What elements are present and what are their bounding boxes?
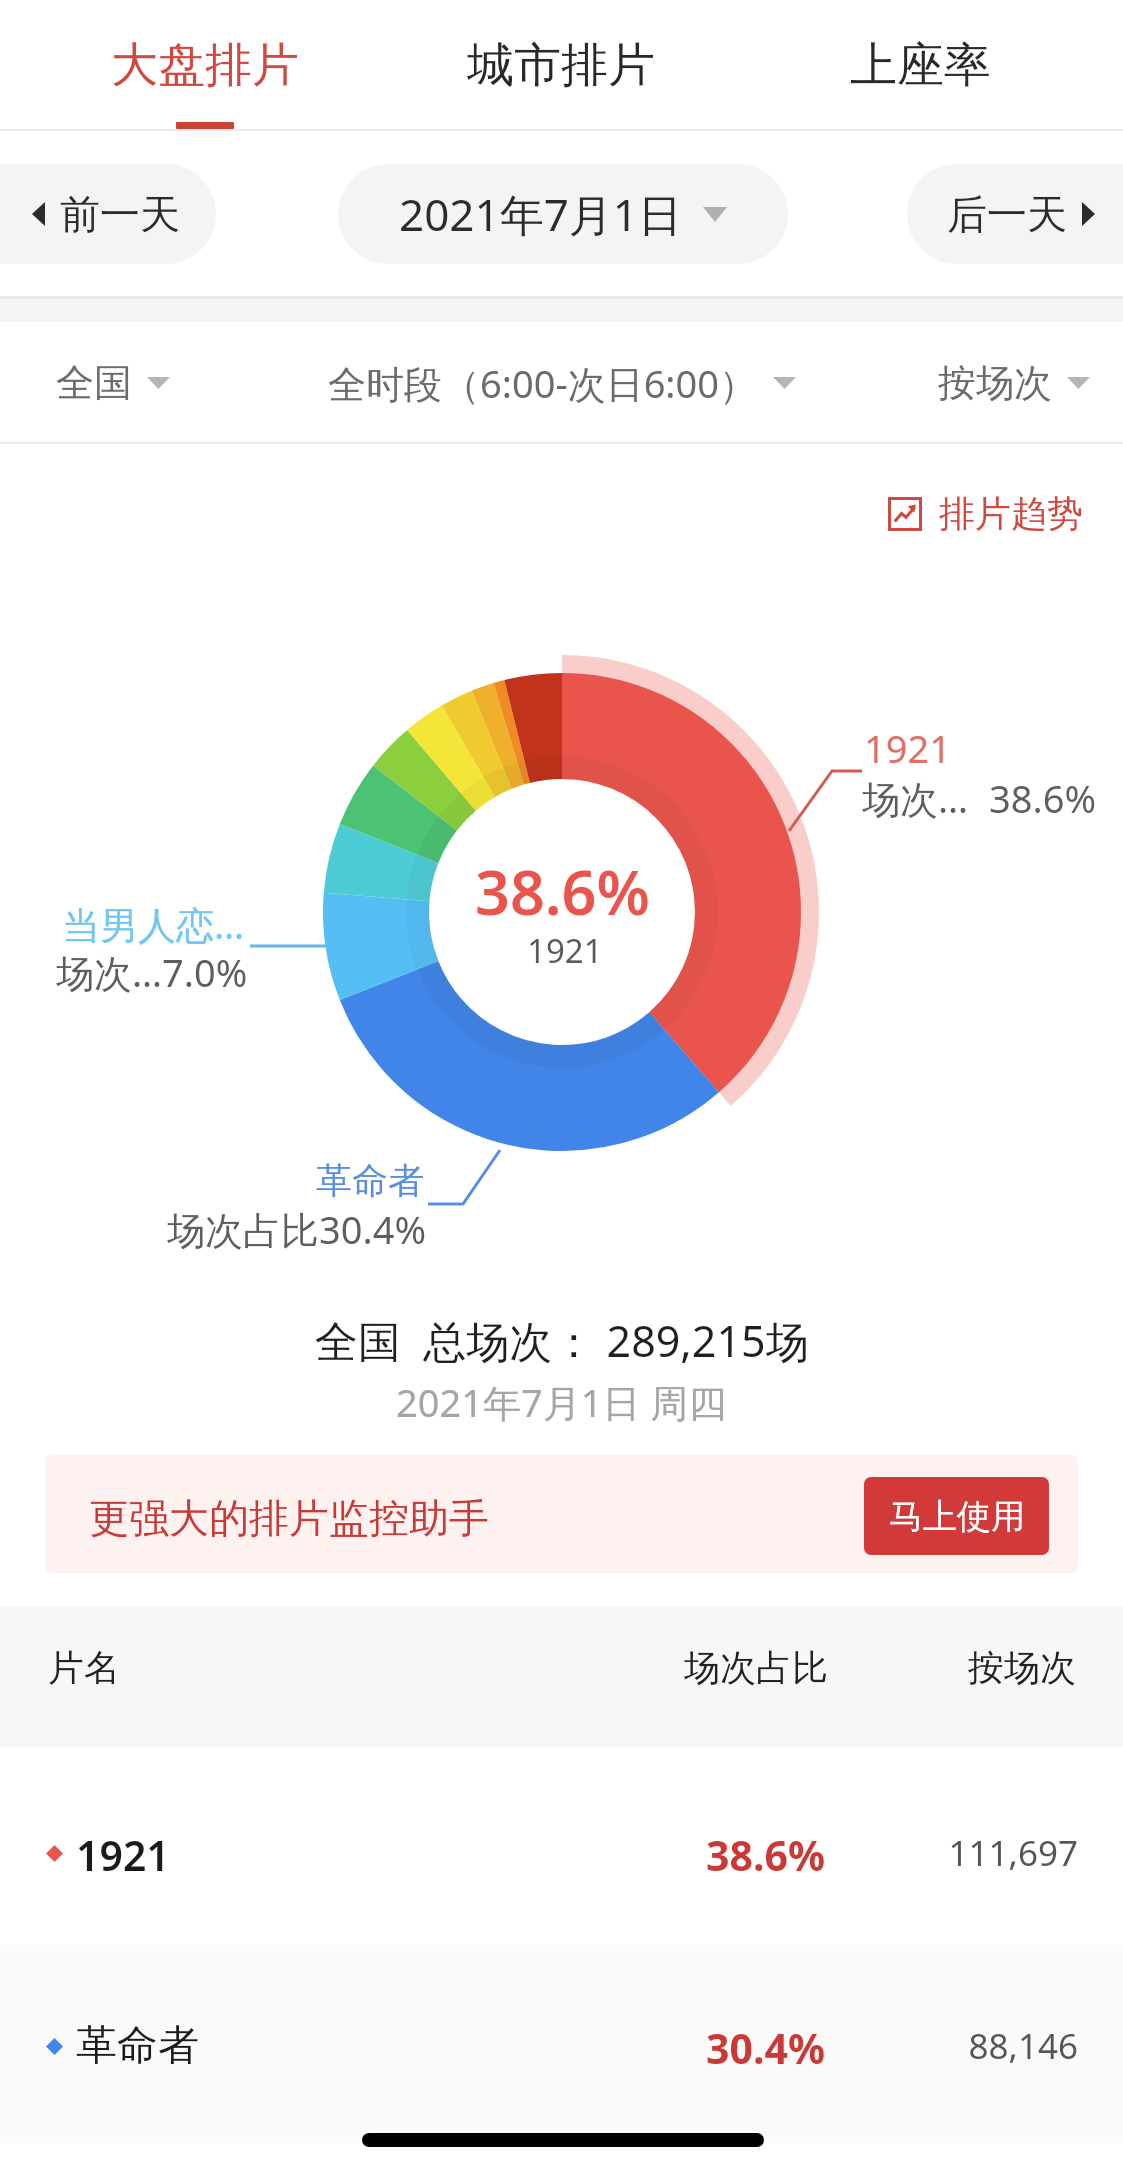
staticText: 38.6% — [475, 850, 650, 933]
staticText: 片名 — [48, 1645, 120, 1690]
staticText: 按场次 — [968, 1645, 1076, 1690]
staticText: 1921 — [527, 928, 603, 973]
staticText: 前一天 — [60, 189, 180, 239]
button[interactable]: 后一天 — [907, 164, 1123, 264]
staticText: 场次… — [862, 772, 969, 824]
button[interactable]: 1921 — [0, 1747, 1123, 1945]
staticText: 38.6% — [706, 1827, 825, 1883]
staticText: 革命者 — [76, 2020, 199, 2072]
button[interactable]: 全时段（6:00-次日6:00） — [328, 347, 796, 419]
button[interactable]: 更强大的排片监控助手 — [45, 1455, 1078, 1573]
staticText: 当男人恋… — [62, 898, 245, 950]
staticText: 2021年7月1日 周四 — [396, 1376, 727, 1428]
button[interactable]: 城市排片 — [385, 0, 737, 131]
staticText: 排片趋势 — [939, 491, 1083, 536]
button[interactable]: 马上使用 — [864, 1477, 1049, 1555]
staticText: 后一天 — [947, 189, 1067, 239]
button[interactable]: 排片趋势 — [878, 483, 1093, 544]
staticText: 30.4% — [706, 2020, 825, 2076]
staticText: 1921 — [864, 722, 951, 774]
staticText: 全时段（6:00-次日6:00） — [328, 357, 758, 409]
staticText: 88,146 — [878, 2022, 1078, 2070]
staticText: 全国 总场次： 289,215场 — [315, 1311, 809, 1370]
staticText: 全国 — [56, 359, 132, 407]
staticText: 上座率 — [850, 36, 991, 95]
staticText: 城市排片 — [467, 36, 655, 95]
staticText: 场次占比 — [684, 1645, 828, 1690]
staticText: 马上使用 — [889, 1495, 1025, 1538]
staticText: 场次占比30.4% — [167, 1203, 426, 1255]
button[interactable]: 革命者 — [0, 1945, 1123, 2143]
staticText: 场次…7.0% — [56, 946, 248, 998]
staticText: 大盘排片 — [111, 36, 299, 95]
button[interactable]: 大盘排片 — [15, 0, 395, 131]
staticText: 2021年7月1日 — [399, 184, 683, 244]
button[interactable]: 上座率 — [760, 0, 1080, 131]
staticText: 革命者 — [316, 1158, 424, 1203]
button[interactable]: 按场次 — [938, 349, 1090, 417]
button[interactable]: 选择日期 2021年7月1日 — [338, 164, 788, 264]
button[interactable]: 前一天 — [0, 164, 216, 264]
staticText: 按场次 — [938, 359, 1052, 407]
staticText: 111,697 — [878, 1829, 1078, 1877]
staticText: 1921 — [76, 1827, 170, 1883]
staticText: 更强大的排片监控助手 — [89, 1493, 489, 1543]
button[interactable]: 全国 — [56, 349, 170, 417]
staticText: 38.6% — [989, 772, 1096, 824]
